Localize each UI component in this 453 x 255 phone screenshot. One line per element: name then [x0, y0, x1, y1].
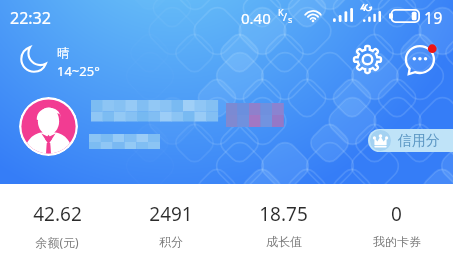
staticText: 我的卡券 [373, 234, 421, 249]
staticText: 晴 [57, 45, 69, 60]
staticText: K [278, 6, 284, 18]
staticText: 积分 [159, 234, 183, 249]
staticText: s [288, 13, 293, 25]
button[interactable]: Settings [353, 45, 382, 74]
staticText: 余额(元) [35, 234, 79, 250]
staticText: 42.62 [33, 201, 82, 227]
staticText: 信用分 [398, 132, 440, 150]
button[interactable]: 0 [340, 184, 453, 255]
staticText: 成长值 [266, 234, 302, 249]
staticText: 0.40 [241, 8, 271, 28]
staticText: 2491 [149, 201, 193, 227]
staticText: / [283, 9, 288, 24]
button[interactable]: 18.75 [227, 184, 340, 255]
button[interactable]: 2491 [114, 184, 227, 255]
staticText: 19 [424, 7, 443, 29]
staticText: 14~25° [57, 62, 100, 80]
staticText: 18.75 [259, 201, 308, 227]
button[interactable]: Profile avatar [19, 97, 78, 156]
button[interactable]: 信用分 [368, 129, 453, 152]
button[interactable]: Messages [404, 42, 439, 77]
staticText: 0 [391, 201, 402, 227]
button[interactable]: 42.62 [0, 184, 114, 255]
staticText: 22:32 [10, 7, 51, 29]
